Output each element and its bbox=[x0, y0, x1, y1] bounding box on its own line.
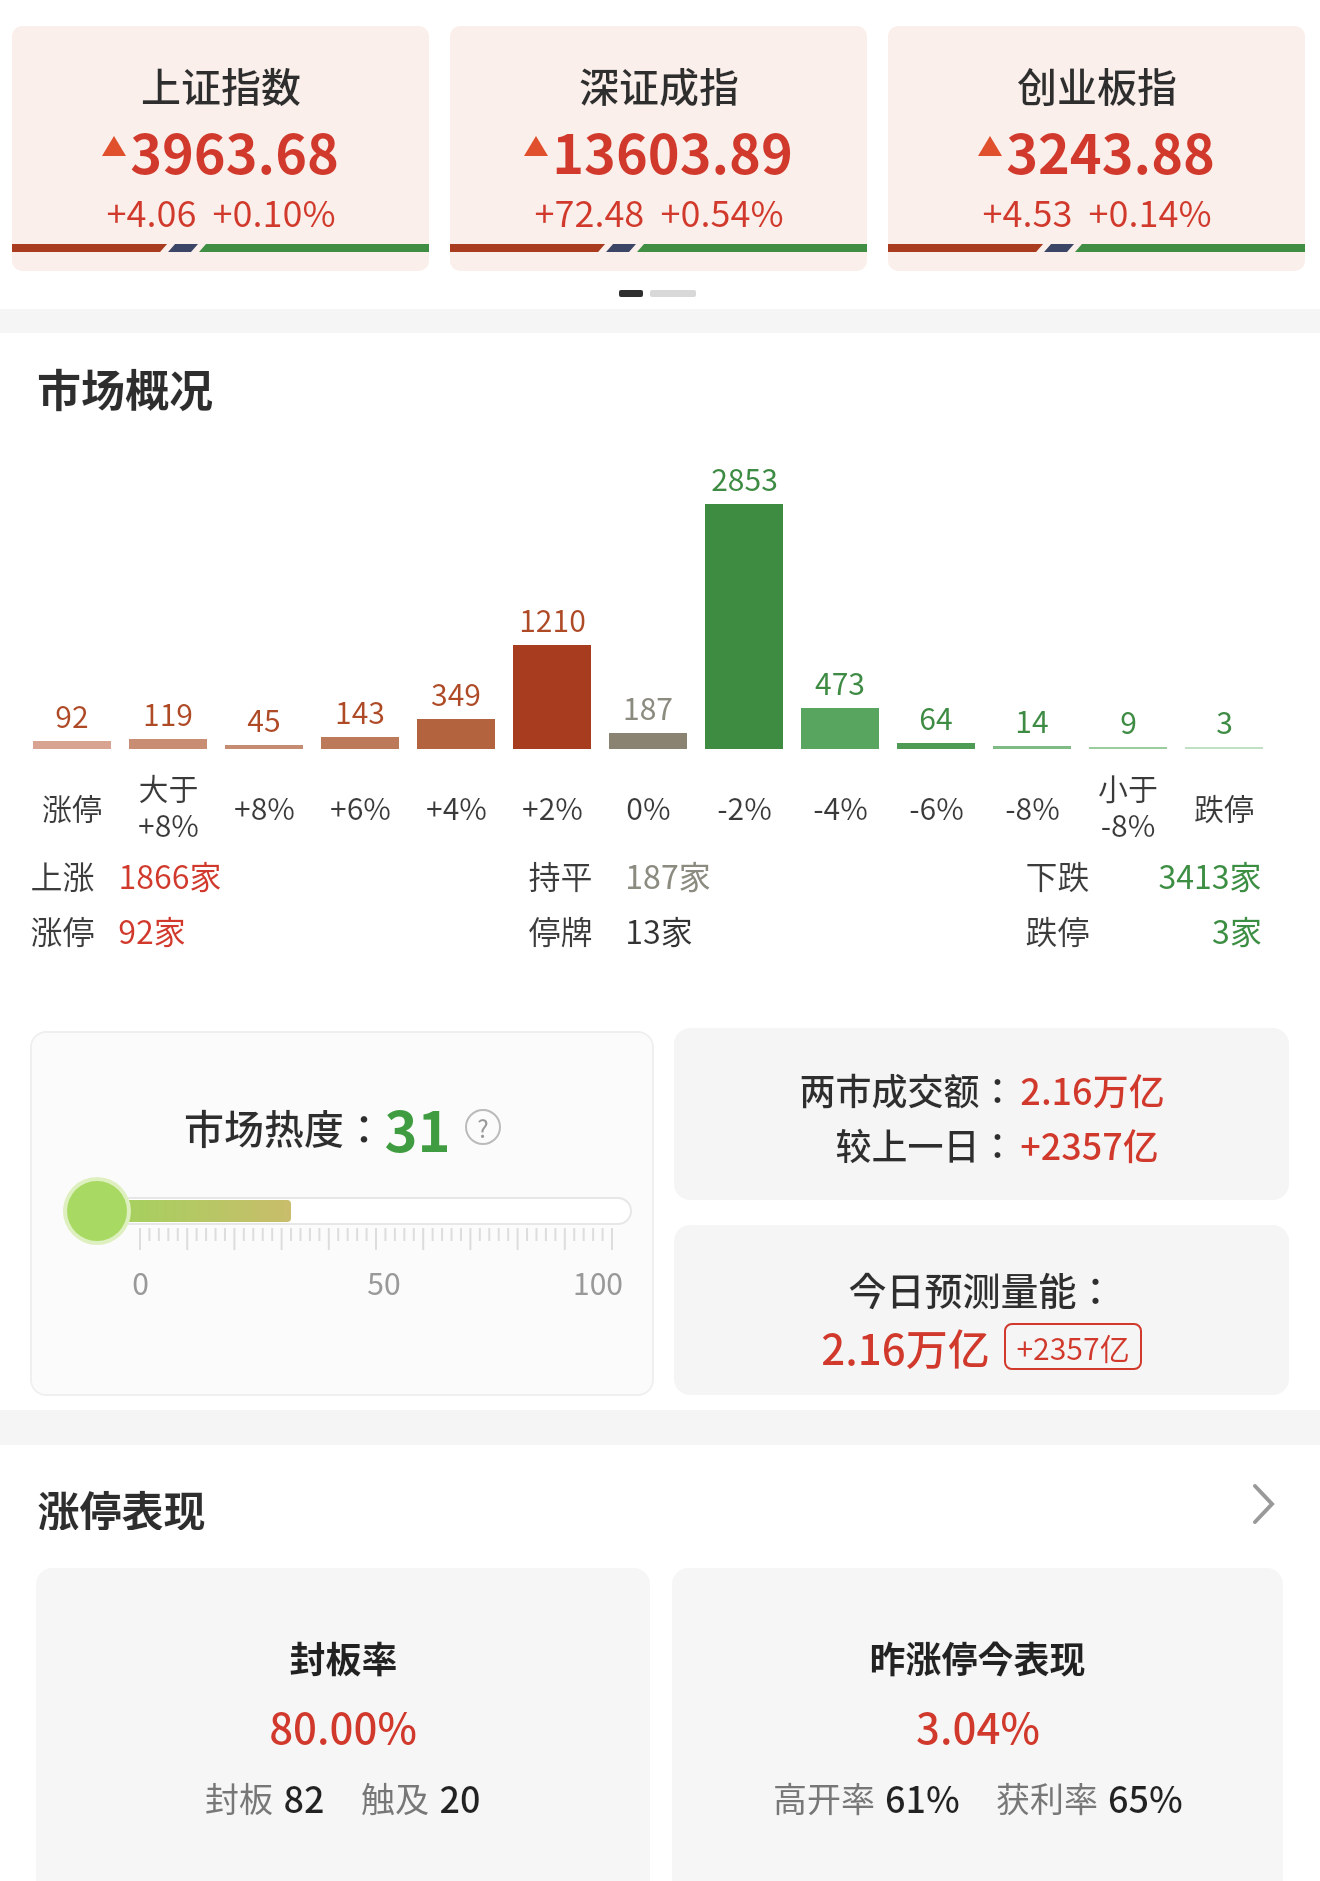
staticText: 上涨 bbox=[30, 852, 95, 898]
button[interactable]: 创业板指 bbox=[888, 26, 1305, 271]
staticText: 92家 bbox=[118, 907, 186, 953]
staticText: 143 bbox=[335, 689, 385, 732]
staticText: 持平 bbox=[528, 852, 593, 898]
staticText: 50 bbox=[367, 1260, 401, 1303]
staticText: +4.06 +0.10% bbox=[106, 185, 336, 235]
button[interactable]: 深证成指 bbox=[450, 26, 867, 271]
staticText: +6% bbox=[330, 785, 391, 828]
staticText: 1210 bbox=[519, 597, 586, 640]
staticText: +2357亿 bbox=[1016, 1325, 1130, 1368]
staticText: ? bbox=[477, 1110, 489, 1145]
staticText: +8% bbox=[234, 785, 295, 828]
button[interactable]: 封板率 bbox=[36, 1568, 650, 1881]
staticText: 涨停 bbox=[42, 785, 102, 828]
staticText: +72.48 +0.54% bbox=[534, 185, 784, 235]
staticText: 82 bbox=[283, 1771, 325, 1823]
staticText: 涨停 bbox=[30, 907, 95, 953]
staticText: -8% bbox=[1005, 785, 1060, 828]
staticText: 80.00% bbox=[269, 1695, 417, 1755]
staticText: 触及 bbox=[361, 1773, 429, 1822]
staticText: 深证成指 bbox=[579, 56, 739, 114]
staticText: 3413家 bbox=[1158, 852, 1262, 898]
button[interactable] bbox=[674, 1028, 1289, 1200]
staticText: 0% bbox=[626, 785, 671, 828]
staticText: 跌停 bbox=[1025, 907, 1090, 953]
staticText: 13家 bbox=[625, 907, 693, 953]
staticText: 100 bbox=[573, 1260, 623, 1303]
staticText: 3家 bbox=[1212, 907, 1262, 953]
staticText: -6% bbox=[909, 785, 964, 828]
staticText: 较上一日： bbox=[835, 1118, 1016, 1168]
staticText: 0 bbox=[132, 1260, 149, 1303]
staticText: 9 bbox=[1120, 699, 1137, 742]
staticText: -2% bbox=[717, 785, 772, 828]
staticText: 3243.88 bbox=[1006, 111, 1215, 181]
staticText: 187 bbox=[623, 685, 673, 728]
staticText: 64 bbox=[919, 695, 953, 738]
button[interactable]: 今日预测量能： bbox=[674, 1225, 1289, 1395]
staticText: -4% bbox=[813, 785, 868, 828]
staticText: 65% bbox=[1108, 1771, 1183, 1823]
staticText: 2853 bbox=[711, 456, 778, 499]
staticText: 小于 -8% bbox=[1098, 765, 1158, 845]
staticText: 封板率 bbox=[289, 1631, 398, 1683]
staticText: 187家 bbox=[625, 852, 711, 898]
staticText: 今日预测量能： bbox=[848, 1261, 1115, 1313]
staticText: +2357亿 bbox=[1020, 1118, 1159, 1168]
staticText: 61% bbox=[885, 1771, 960, 1823]
staticText: 两市成交额： bbox=[799, 1063, 1016, 1113]
staticText: 跌停 bbox=[1194, 785, 1254, 828]
staticText: +4.53 +0.14% bbox=[982, 185, 1212, 235]
staticText: 349 bbox=[431, 671, 481, 714]
staticText: 涨停表现 bbox=[37, 1478, 206, 1530]
staticText: 31 bbox=[384, 1087, 451, 1167]
staticText: 45 bbox=[247, 697, 281, 740]
staticText: 119 bbox=[143, 691, 193, 734]
staticText: 高开率 bbox=[773, 1773, 875, 1822]
staticText: 3.04% bbox=[916, 1695, 1040, 1755]
staticText: 停牌 bbox=[528, 907, 593, 953]
button[interactable]: 上证指数 bbox=[12, 26, 429, 271]
staticText: 昨涨停今表现 bbox=[869, 1631, 1086, 1683]
staticText: 92 bbox=[55, 693, 89, 736]
staticText: 2.16万亿 bbox=[821, 1316, 990, 1376]
staticText: 3963.68 bbox=[130, 111, 339, 181]
staticText: 大于 +8% bbox=[138, 765, 199, 845]
staticText: 2.16万亿 bbox=[1020, 1063, 1165, 1113]
staticText: 1866家 bbox=[118, 852, 222, 898]
staticText: 市场概况 bbox=[37, 356, 213, 420]
button[interactable]: 涨停表现 bbox=[0, 1478, 1320, 1530]
staticText: 473 bbox=[815, 660, 865, 703]
staticText: +2% bbox=[522, 785, 583, 828]
staticText: 14 bbox=[1015, 698, 1049, 741]
staticText: 上证指数 bbox=[141, 56, 301, 114]
staticText: 下跌 bbox=[1025, 852, 1090, 898]
button[interactable]: 昨涨停今表现 bbox=[672, 1568, 1283, 1881]
staticText: 创业板指 bbox=[1017, 56, 1177, 114]
staticText: 封板 bbox=[205, 1773, 273, 1822]
staticText: 市场热度： bbox=[184, 1098, 384, 1156]
staticText: 13603.89 bbox=[552, 111, 793, 181]
staticText: +4% bbox=[426, 785, 487, 828]
staticText: 3 bbox=[1216, 699, 1233, 742]
staticText: 20 bbox=[439, 1771, 481, 1823]
button[interactable]: 市场热度： bbox=[30, 1031, 654, 1396]
staticText: 获利率 bbox=[996, 1773, 1098, 1822]
